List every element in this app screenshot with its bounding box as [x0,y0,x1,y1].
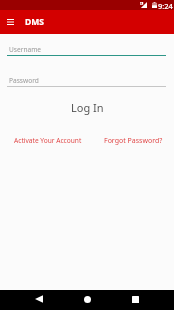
button[interactable]: Activate Your Account [14,133,82,148]
button[interactable]: Recent apps [119,289,152,309]
staticText: Password [9,76,39,85]
staticText: DMS [25,16,44,28]
button[interactable]: Home [71,289,104,309]
staticText: Log In [71,100,104,115]
staticText: Forgot Password? [104,136,163,146]
button[interactable]: Password [7,73,166,87]
button[interactable]: Log In [0,98,174,116]
staticText: Username [9,45,42,54]
staticText: Activate Your Account [14,136,82,145]
staticText: 9:24 [158,1,173,11]
button[interactable]: Forgot Password? [104,133,163,149]
button[interactable]: Back [22,289,55,309]
button[interactable]: Username [7,42,166,56]
button[interactable]: Open navigation menu [0,10,20,34]
